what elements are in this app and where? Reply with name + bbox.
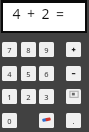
staticText: . <box>72 116 75 126</box>
button[interactable]: 2 <box>21 89 36 104</box>
button[interactable]: Plus <box>66 42 81 57</box>
button[interactable]: 0 <box>2 113 17 128</box>
button[interactable]: 1 <box>2 89 17 104</box>
button[interactable]: . <box>66 113 81 128</box>
button[interactable]: 5 <box>21 66 36 81</box>
button[interactable]: Equals <box>66 89 81 104</box>
staticText: 1 <box>7 92 12 102</box>
button[interactable]: 9 <box>39 42 54 57</box>
button[interactable]: 7 <box>2 42 17 57</box>
button[interactable]: Clear <box>39 113 54 128</box>
staticText: 5 <box>26 69 31 79</box>
staticText: 9 <box>44 45 49 55</box>
staticText: 6 <box>44 69 49 79</box>
button[interactable]: 3 <box>39 89 54 104</box>
button[interactable]: 8 <box>21 42 36 57</box>
staticText: 8 <box>26 45 31 55</box>
button[interactable]: 4 <box>2 66 17 81</box>
staticText: 4 <box>7 69 12 79</box>
staticText: 2 <box>26 92 31 102</box>
staticText: 3 <box>44 92 49 102</box>
button[interactable]: 6 <box>39 66 54 81</box>
staticText: 7 <box>7 45 12 55</box>
staticText: 0 <box>7 116 12 126</box>
staticText: 4 + 2 = <box>0 4 80 23</box>
button[interactable]: Minus <box>66 66 81 81</box>
